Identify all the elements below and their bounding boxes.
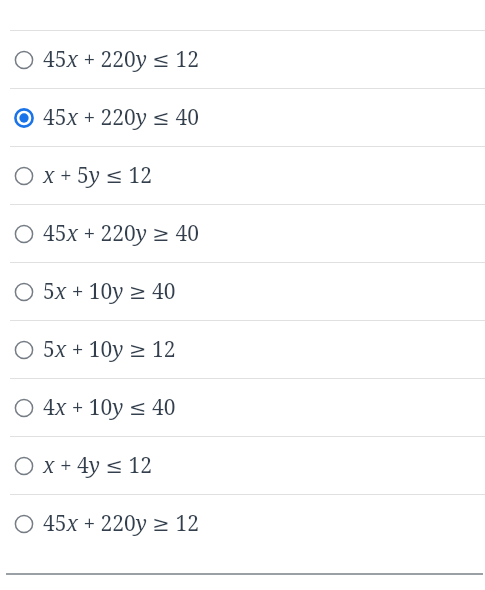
button[interactable]: 4x + 10y ≤ 40 — [0, 379, 485, 436]
button[interactable]: 45x + 220y ≥ 12 — [0, 495, 485, 552]
staticText: 5x + 10y ≥ 40 — [43, 277, 176, 306]
staticText: 45x + 220y ≤ 12 — [43, 45, 199, 74]
staticText: x + 4y ≤ 12 — [43, 451, 152, 480]
button[interactable]: 5x + 10y ≥ 12 — [0, 321, 485, 378]
button[interactable]: 45x + 220y ≥ 40 — [0, 205, 485, 262]
button[interactable]: 45x + 220y ≤ 12 — [0, 31, 485, 88]
staticText: x + 5y ≤ 12 — [43, 161, 152, 190]
staticText: 45x + 220y ≤ 40 — [43, 103, 199, 132]
staticText: 45x + 220y ≥ 12 — [43, 509, 199, 538]
staticText: 45x + 220y ≥ 40 — [43, 219, 199, 248]
button[interactable]: 5x + 10y ≥ 40 — [0, 263, 485, 320]
staticText: 5x + 10y ≥ 12 — [43, 335, 176, 364]
staticText: 4x + 10y ≤ 40 — [43, 393, 176, 422]
button[interactable]: x + 5y ≤ 12 — [0, 147, 485, 204]
button[interactable]: 45x + 220y ≤ 40 — [0, 89, 485, 146]
button[interactable]: x + 4y ≤ 12 — [0, 437, 485, 494]
